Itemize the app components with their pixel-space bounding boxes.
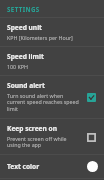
staticText: KPH [Kilometers per Hour]: [7, 34, 73, 41]
other: Sound alert checkbox: [84, 90, 98, 104]
staticText: Prevent screen off while using the app: [7, 135, 81, 149]
other: Keep screen on checkbox: [84, 130, 98, 144]
staticText: Sound alert: [7, 81, 45, 90]
staticText: Speed unit: [7, 23, 42, 32]
staticText: Keep screen on: [7, 124, 57, 133]
button[interactable]: Text color: [0, 155, 104, 178]
button[interactable]: Speed unit: [0, 18, 104, 46]
staticText: Turn sound alert when current speed reac…: [7, 92, 81, 113]
other: Choose text color: [87, 161, 98, 172]
staticText: Text color: [7, 162, 40, 171]
staticText: Speed limit: [7, 52, 44, 61]
button[interactable]: Sound alert: [0, 76, 104, 118]
staticText: SETTINGS: [7, 5, 40, 13]
staticText: 100 KPH: [7, 63, 28, 70]
button[interactable]: Speed limit: [0, 47, 104, 75]
button[interactable]: Keep screen on: [0, 119, 104, 154]
